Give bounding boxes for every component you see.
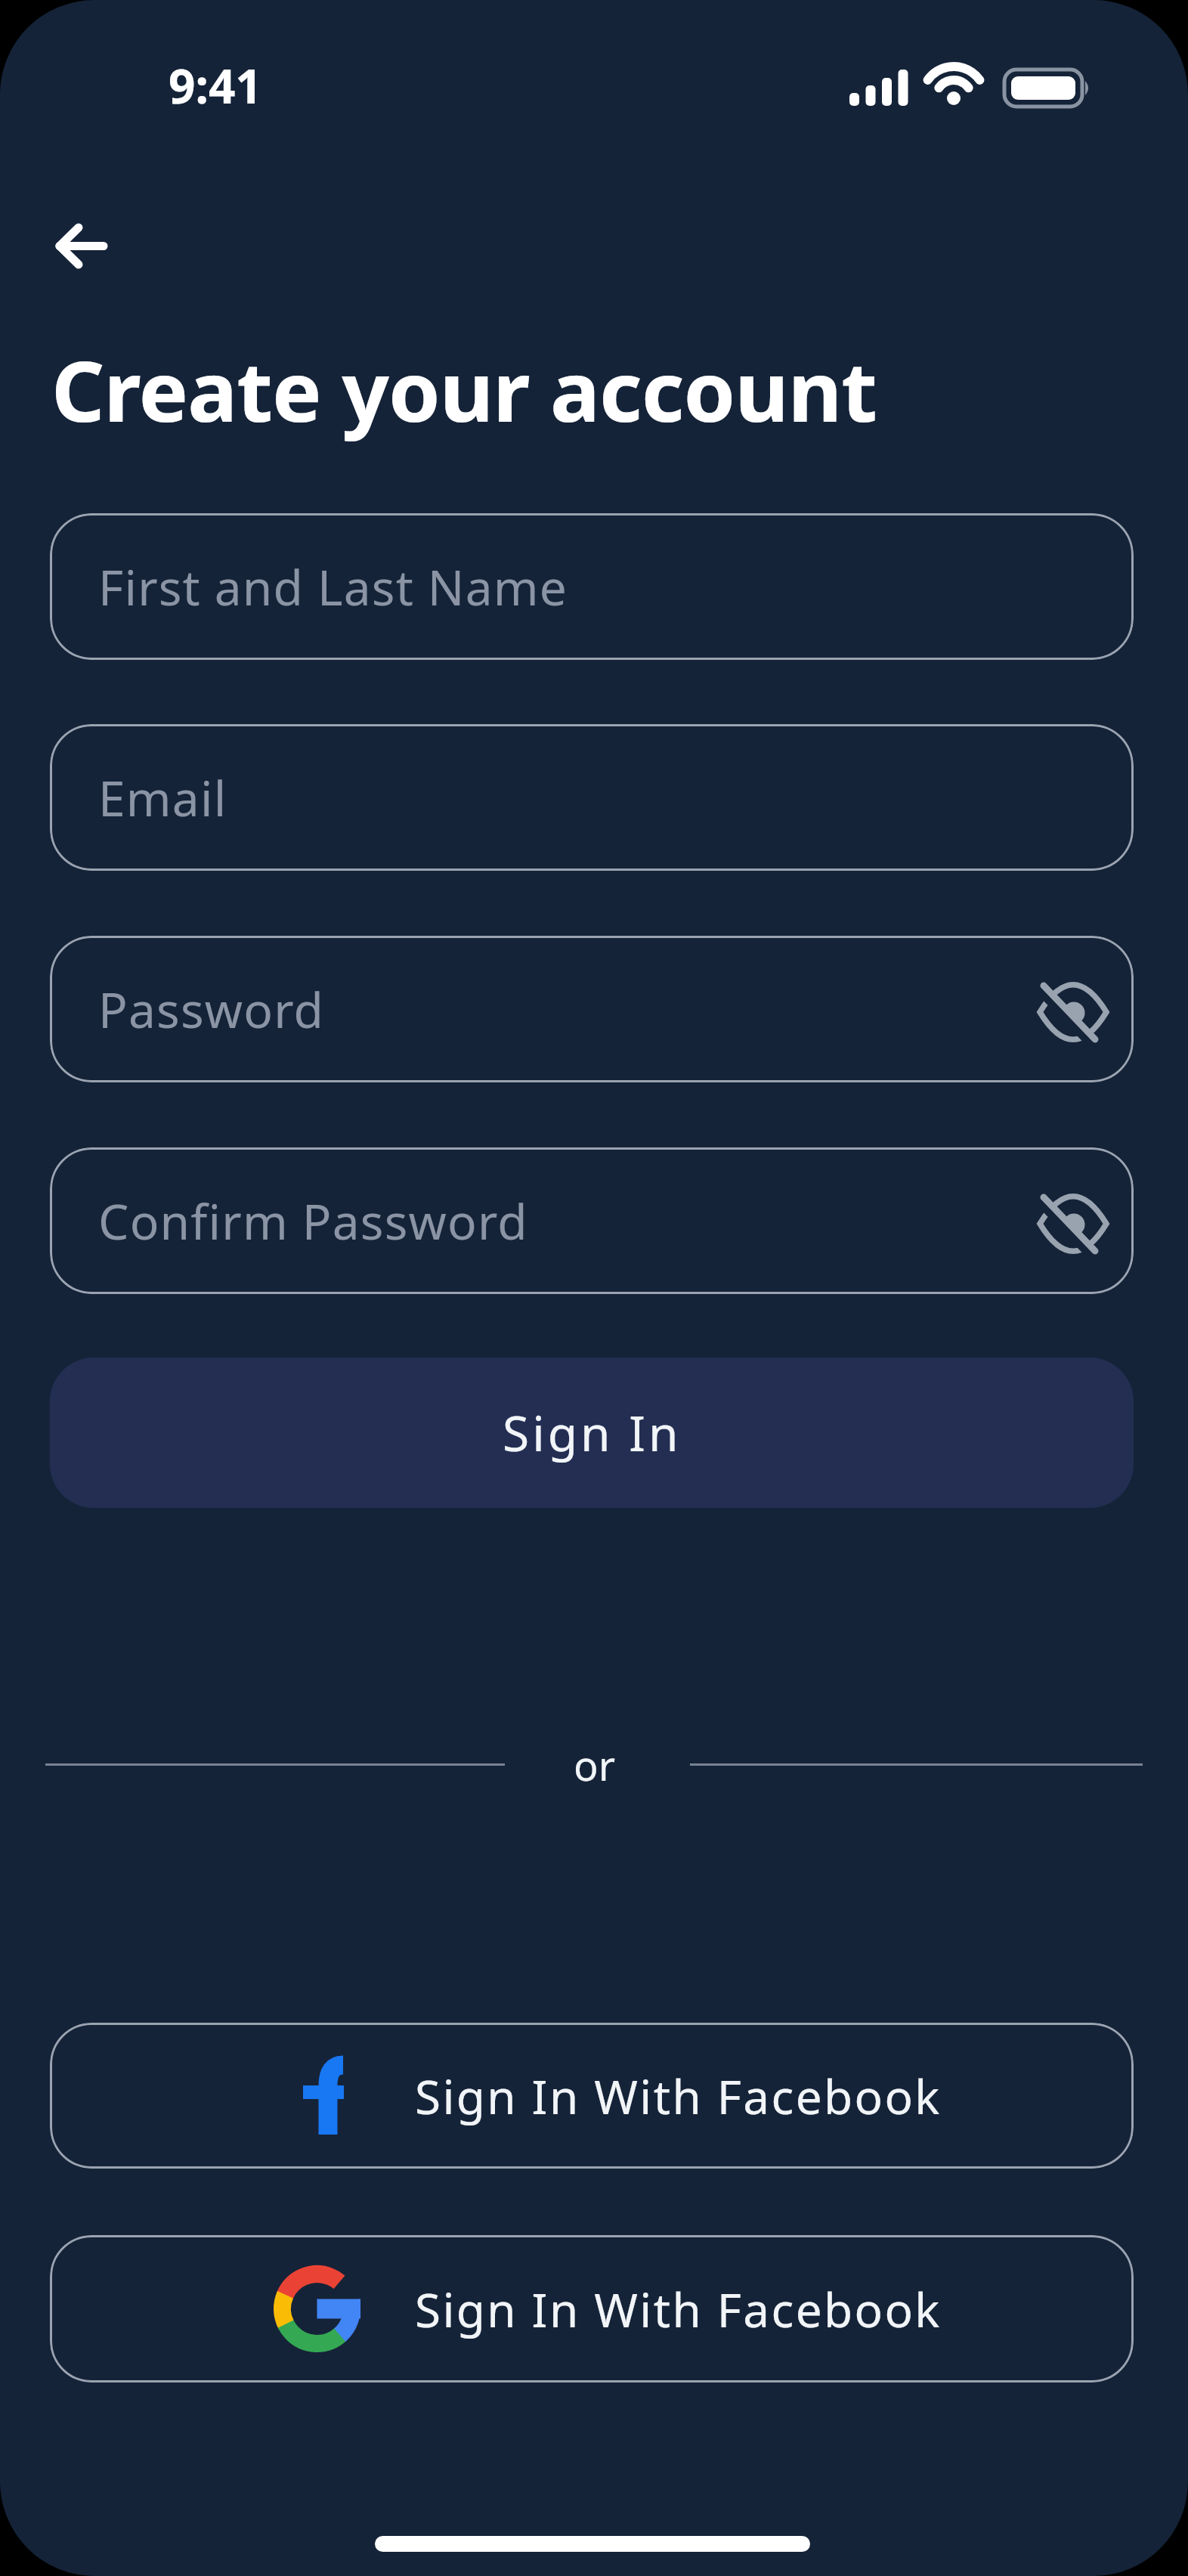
staticText: Sign In [503,1400,682,1466]
staticText: Email [98,765,227,831]
staticText: or [574,1737,615,1793]
button[interactable]: Sign In With Facebook [50,2023,1134,2169]
button[interactable]: Sign In [50,1358,1134,1508]
staticText: Sign In With Facebook [415,2277,942,2341]
staticText: Password [98,977,325,1042]
button[interactable]: First and Last Name [50,513,1134,660]
staticText: Create your account [51,333,877,446]
staticText: Confirm Password [98,1188,528,1254]
button[interactable]: Sign In With Facebook [50,2235,1134,2382]
button[interactable]: Confirm Password [50,1147,1134,1294]
button[interactable]: Email [50,724,1134,871]
staticText: First and Last Name [98,554,568,620]
button[interactable] [36,204,127,287]
staticText: 9:41 [169,54,262,117]
staticText: Sign In With Facebook [415,2064,942,2128]
button[interactable]: Password [50,936,1134,1082]
